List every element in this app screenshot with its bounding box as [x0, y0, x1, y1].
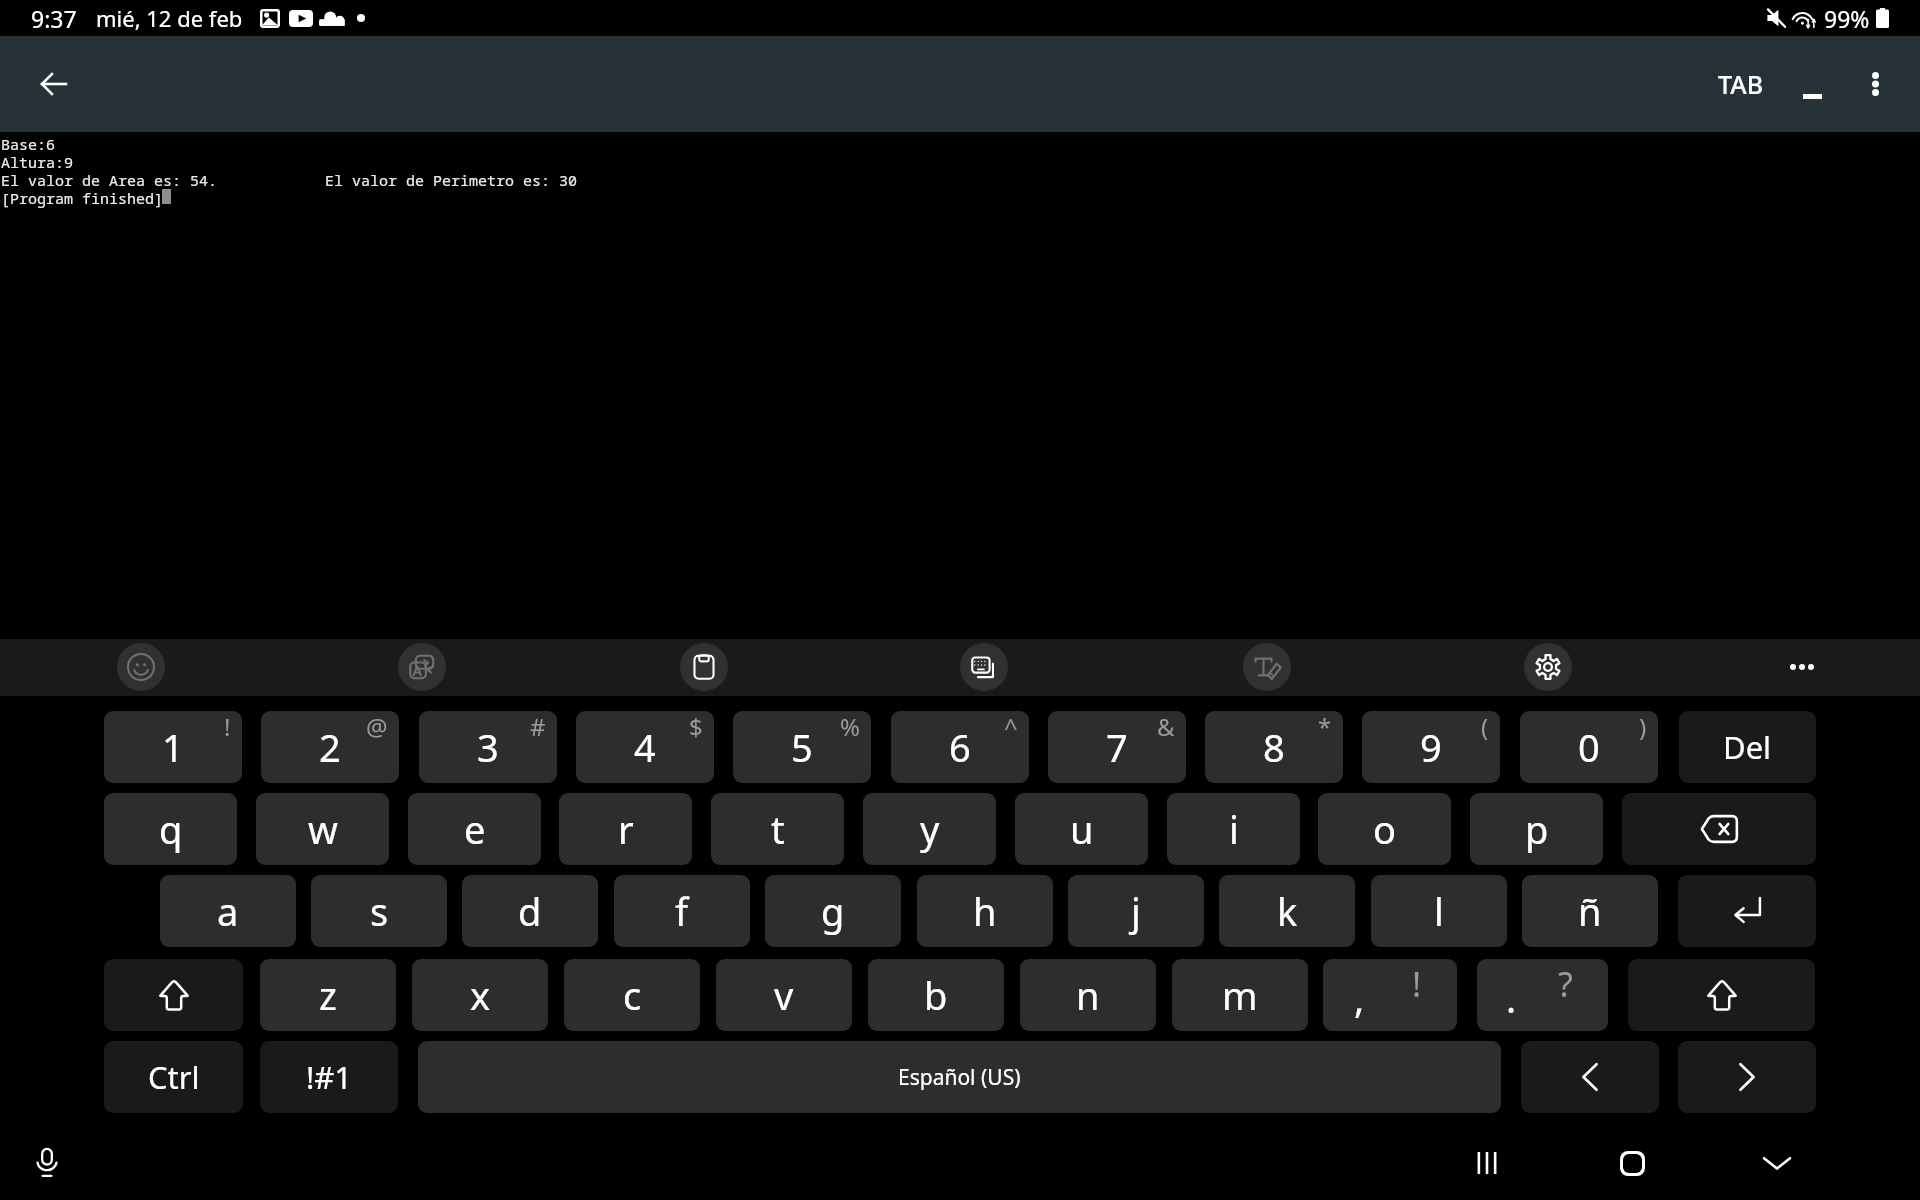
staticText: v: [774, 969, 794, 1021]
button[interactable]: v: [716, 959, 852, 1031]
button[interactable]: Shift: [1628, 959, 1815, 1031]
staticText: j: [1131, 885, 1141, 937]
button[interactable]: q: [104, 793, 237, 865]
button[interactable]: h: [917, 875, 1053, 947]
button[interactable]: Keyboard modes: [960, 643, 1008, 691]
button[interactable]: 7: [1048, 711, 1186, 783]
button[interactable]: w: [256, 793, 389, 865]
staticText: #: [530, 711, 546, 743]
staticText: Del: [1723, 726, 1772, 768]
button[interactable]: Home: [1608, 1139, 1656, 1187]
staticText: Español (US): [898, 1063, 1021, 1092]
button[interactable]: Emoji: [117, 643, 165, 691]
staticText: y: [920, 803, 940, 855]
button[interactable]: 8: [1205, 711, 1343, 783]
button[interactable]: 5: [733, 711, 871, 783]
button[interactable]: t: [711, 793, 844, 865]
button[interactable]: Ctrl: [104, 1041, 243, 1113]
button[interactable]: Enter: [1678, 875, 1816, 947]
staticText: c: [623, 969, 642, 1021]
button[interactable]: TAB: [1700, 36, 1782, 132]
staticText: *: [1318, 711, 1332, 743]
button[interactable]: 1: [104, 711, 242, 783]
staticText: %: [840, 711, 860, 743]
button[interactable]: l: [1371, 875, 1507, 947]
staticText: ,: [1354, 972, 1365, 1024]
button[interactable]: p: [1470, 793, 1603, 865]
staticText: mié, 12 de feb: [96, 3, 243, 33]
button[interactable]: i: [1167, 793, 1300, 865]
button[interactable]: Shift: [104, 959, 243, 1031]
button[interactable]: Recent apps: [1463, 1139, 1511, 1187]
staticText: !: [224, 711, 231, 743]
staticText: !#1: [306, 1056, 353, 1098]
button[interactable]: Del: [1679, 711, 1816, 783]
button[interactable]: ,: [1323, 959, 1457, 1031]
button[interactable]: 9: [1362, 711, 1500, 783]
button[interactable]: k: [1219, 875, 1355, 947]
button[interactable]: 6: [891, 711, 1029, 783]
button[interactable]: 3: [419, 711, 557, 783]
staticText: (: [1481, 711, 1489, 743]
staticText: .: [1506, 972, 1517, 1024]
button[interactable]: f: [614, 875, 750, 947]
button[interactable]: Handwriting: [1243, 643, 1291, 691]
button[interactable]: s: [311, 875, 447, 947]
staticText: 99%: [1824, 3, 1870, 34]
staticText: l: [1434, 885, 1444, 937]
button[interactable]: d: [462, 875, 598, 947]
staticText: f: [675, 885, 689, 937]
button[interactable]: Hide keyboard: [1753, 1139, 1801, 1187]
button[interactable]: a: [160, 875, 296, 947]
button[interactable]: More options: [1850, 36, 1900, 132]
button[interactable]: Move cursor right: [1678, 1041, 1816, 1113]
button[interactable]: Settings: [1524, 643, 1572, 691]
button[interactable]: .: [1477, 959, 1608, 1031]
staticText: e: [464, 803, 486, 855]
button[interactable]: o: [1318, 793, 1451, 865]
staticText: 7: [1106, 721, 1128, 773]
staticText: p: [1525, 803, 1549, 855]
button[interactable]: c: [564, 959, 700, 1031]
button[interactable]: e: [408, 793, 541, 865]
button[interactable]: Backspace: [1622, 793, 1816, 865]
staticText: d: [518, 885, 542, 937]
staticText: o: [1373, 803, 1396, 855]
button[interactable]: Español (US): [418, 1041, 1501, 1113]
button[interactable]: b: [868, 959, 1004, 1031]
staticText: 2: [319, 721, 341, 773]
button[interactable]: Move cursor left: [1521, 1041, 1659, 1113]
button[interactable]: j: [1068, 875, 1204, 947]
button[interactable]: ñ: [1522, 875, 1658, 947]
staticText: h: [973, 885, 997, 937]
staticText: k: [1277, 885, 1298, 937]
button[interactable]: More: [1780, 645, 1824, 689]
button[interactable]: Back: [30, 60, 78, 108]
staticText: ?: [1558, 961, 1573, 1007]
staticText: w: [308, 803, 338, 855]
button[interactable]: x: [412, 959, 548, 1031]
button[interactable]: Translate: [398, 643, 446, 691]
staticText: m: [1222, 969, 1258, 1021]
button[interactable]: n: [1020, 959, 1156, 1031]
button[interactable]: 0: [1520, 711, 1658, 783]
button[interactable]: u: [1015, 793, 1148, 865]
button[interactable]: Voice input: [23, 1139, 71, 1187]
button[interactable]: m: [1172, 959, 1308, 1031]
button[interactable]: z: [260, 959, 396, 1031]
button[interactable]: 4: [576, 711, 714, 783]
button[interactable]: Minimize: [1788, 36, 1836, 132]
staticText: z: [319, 969, 337, 1021]
staticText: &: [1157, 711, 1175, 743]
staticText: x: [470, 969, 491, 1021]
staticText: t: [771, 803, 785, 855]
button[interactable]: Clipboard: [680, 643, 728, 691]
button[interactable]: r: [559, 793, 692, 865]
staticText: b: [924, 969, 948, 1021]
button[interactable]: g: [765, 875, 901, 947]
button[interactable]: !#1: [260, 1041, 398, 1113]
staticText: Altura:9: [1, 152, 74, 172]
button[interactable]: 2: [261, 711, 399, 783]
staticText: i: [1229, 803, 1239, 855]
button[interactable]: y: [863, 793, 996, 865]
